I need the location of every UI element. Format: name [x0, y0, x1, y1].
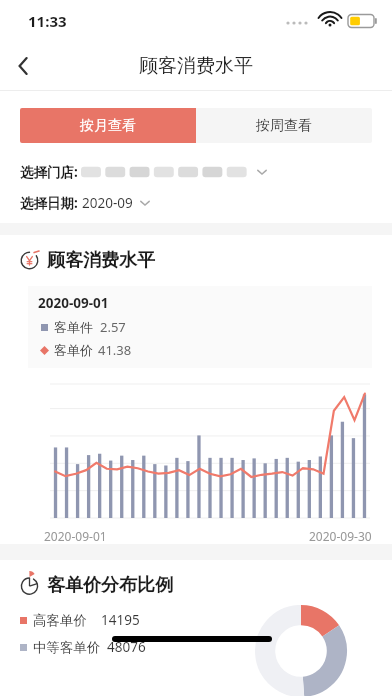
- button[interactable]: 选择日期:: [20, 191, 152, 215]
- button[interactable]: 按月查看: [20, 108, 196, 143]
- staticText: 2020-09-30: [309, 528, 372, 544]
- staticText: 顾客消费水平: [47, 249, 155, 272]
- staticText: 选择门店:: [20, 163, 78, 181]
- staticText: 顾客消费水平: [139, 54, 253, 78]
- button[interactable]: Back: [0, 42, 48, 90]
- staticText: 2020-09-01: [44, 528, 107, 544]
- staticText: 2.57: [100, 318, 126, 336]
- staticText: 中等客单价: [33, 639, 101, 656]
- staticText: 按月查看: [80, 117, 136, 135]
- staticText: 2020-09-01: [38, 294, 109, 312]
- staticText: 11:33: [28, 11, 67, 31]
- button[interactable]: 按周查看: [196, 108, 372, 143]
- staticText: 按周查看: [256, 117, 312, 135]
- staticText: 2020-09: [82, 194, 133, 212]
- staticText: 客单价: [54, 342, 93, 358]
- staticText: 选择日期:: [20, 194, 78, 212]
- button[interactable]: 选择门店:: [20, 159, 269, 185]
- staticText: 48076: [107, 638, 146, 656]
- staticText: 高客单价: [33, 612, 87, 629]
- staticText: 41.38: [98, 341, 132, 359]
- staticText: 14195: [101, 611, 140, 629]
- staticText: 客单件: [54, 319, 93, 335]
- staticText: 客单价分布比例: [47, 574, 173, 597]
